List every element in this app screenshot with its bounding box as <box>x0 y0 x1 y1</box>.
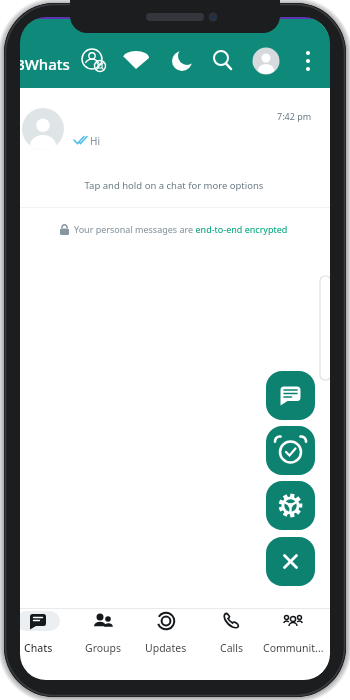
staticText: 7:42 pm <box>277 110 312 122</box>
button[interactable] <box>79 47 113 81</box>
button[interactable] <box>266 426 315 475</box>
button[interactable]: Your personal messages are end-to-end en… <box>17 223 331 235</box>
staticText: Communit... <box>263 641 323 655</box>
button[interactable]: Groups <box>73 608 133 668</box>
button[interactable]: Hi <box>17 106 331 168</box>
staticText: Chats <box>24 641 53 655</box>
button[interactable]: Updates <box>136 608 196 668</box>
button[interactable]: Calls <box>201 608 261 668</box>
staticText: GBWhats <box>17 54 70 74</box>
button[interactable] <box>293 47 323 81</box>
button[interactable] <box>266 371 315 420</box>
staticText: Hi <box>90 134 100 148</box>
staticText: Tap and hold on a chat for more options <box>17 179 331 192</box>
staticText: Your personal messages are end-to-end en… <box>74 223 288 235</box>
button[interactable] <box>165 47 199 81</box>
button[interactable]: Chats <box>17 608 68 668</box>
button[interactable] <box>206 47 240 81</box>
button[interactable] <box>266 481 315 530</box>
staticText: Calls <box>220 641 243 655</box>
button[interactable] <box>266 537 315 586</box>
button[interactable] <box>249 47 283 81</box>
staticText: Updates <box>145 641 187 655</box>
button[interactable] <box>119 47 153 81</box>
staticText: Groups <box>85 641 122 655</box>
button[interactable]: Communit... <box>263 608 323 668</box>
